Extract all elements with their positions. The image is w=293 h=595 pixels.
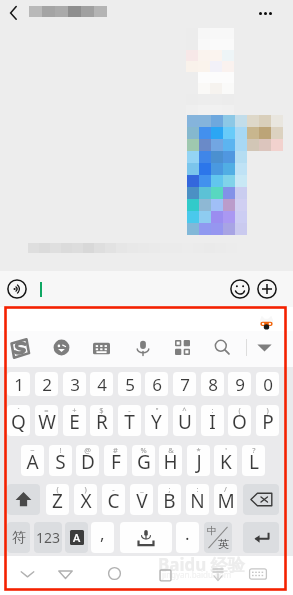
button[interactable]: Voice input <box>134 339 152 357</box>
button[interactable]: 6 <box>145 372 168 396</box>
staticText: X <box>80 488 92 514</box>
button[interactable]: 3 <box>63 372 86 396</box>
button[interactable]: 5 <box>118 372 141 396</box>
button[interactable]: ' <box>214 445 237 476</box>
button[interactable]: Hide keyboard <box>17 563 38 584</box>
staticText: $ <box>99 405 104 415</box>
button[interactable]: % <box>132 445 155 476</box>
staticText: 7 <box>180 373 190 396</box>
staticText: R <box>96 409 108 435</box>
staticText: * <box>196 445 201 455</box>
button[interactable]: $ <box>90 405 113 436</box>
staticText: T <box>124 409 135 435</box>
button[interactable]: Hide toolbar <box>256 342 273 353</box>
button[interactable]: Emoji <box>230 279 250 299</box>
staticText: N <box>190 488 205 514</box>
staticText: F <box>111 449 121 475</box>
staticText: % <box>140 445 147 455</box>
button[interactable]: 9 <box>228 372 251 396</box>
button[interactable]: Shift <box>7 484 40 515</box>
button[interactable]: ; <box>158 484 181 515</box>
button[interactable]: # <box>104 445 127 476</box>
staticText: jingyan.baidu.com <box>162 569 232 580</box>
button[interactable]: 4 <box>90 372 113 396</box>
button[interactable]: Home <box>104 563 125 584</box>
staticText: G <box>137 449 151 475</box>
staticText: U <box>178 409 192 435</box>
button[interactable]: Backspace <box>243 484 279 515</box>
button[interactable]: : <box>201 405 224 436</box>
button[interactable]: More options <box>252 2 278 24</box>
button[interactable]: ^ <box>173 405 196 436</box>
button[interactable]: * <box>187 445 210 476</box>
button[interactable]: Switch language <box>204 522 232 553</box>
button[interactable]: ) <box>74 484 97 515</box>
staticText: ? <box>252 445 256 455</box>
staticText: B <box>163 488 176 514</box>
button[interactable]: Voice input <box>7 279 27 299</box>
staticText: W <box>38 409 56 435</box>
button[interactable]: 2 <box>35 372 58 396</box>
button[interactable]: Recent apps <box>155 563 176 584</box>
button[interactable]: Numbers <box>34 522 62 553</box>
button[interactable]: Space <box>120 522 172 553</box>
staticText: C <box>107 488 120 514</box>
button[interactable]: Keyboard layout <box>93 340 110 357</box>
button[interactable]: 8 <box>201 372 224 396</box>
button[interactable]: 7 <box>173 372 196 396</box>
button[interactable]: ? <box>242 445 265 476</box>
staticText: Z <box>52 488 63 514</box>
staticText: , <box>100 522 105 545</box>
button[interactable]: Search <box>214 339 231 356</box>
button[interactable]: 0 <box>256 372 279 396</box>
staticText: ^ <box>182 405 187 415</box>
staticText: ' <box>225 445 227 455</box>
staticText: S <box>55 449 66 475</box>
button[interactable]: / <box>214 484 237 515</box>
staticText: O <box>232 409 247 435</box>
staticText: 8 <box>208 373 218 396</box>
button[interactable]: Back <box>3 1 25 23</box>
button[interactable]: Symbols <box>7 522 30 553</box>
button[interactable]: ! <box>49 445 72 476</box>
button[interactable]: = <box>35 405 58 436</box>
staticText: A <box>26 449 39 475</box>
staticText: ! <box>59 445 62 455</box>
button[interactable]: + <box>63 405 86 436</box>
staticText: K <box>220 449 232 475</box>
button[interactable]: Switch keyboard <box>248 564 268 584</box>
button[interactable]: : <box>186 484 209 515</box>
button[interactable]: ( <box>46 484 69 515</box>
button[interactable]: More functions <box>257 279 277 299</box>
button[interactable]: - <box>118 405 141 436</box>
button[interactable]: _ <box>130 484 153 515</box>
button[interactable]: ) <box>256 405 279 436</box>
button[interactable]: Enter <box>243 522 279 553</box>
staticText: A <box>73 530 81 545</box>
staticText: 6 <box>152 373 162 396</box>
button[interactable]: Stickers <box>53 339 70 356</box>
staticText: & <box>168 445 174 455</box>
button[interactable]: ( <box>228 405 251 436</box>
button[interactable]: @ <box>76 445 99 476</box>
button[interactable]: Back <box>55 563 76 584</box>
button[interactable]: ~ <box>21 445 44 476</box>
button[interactable]: & <box>159 445 182 476</box>
button[interactable]: Close keyboard <box>208 563 228 583</box>
button[interactable]: Period <box>176 522 199 553</box>
button[interactable]: ` <box>7 405 30 436</box>
staticText: / <box>224 484 227 494</box>
staticText: ( <box>238 405 241 415</box>
button[interactable]: Capitalize <box>65 522 88 553</box>
button[interactable]: " <box>145 405 168 436</box>
button[interactable]: - <box>102 484 125 515</box>
button[interactable]: Comma <box>91 522 114 553</box>
staticText: - <box>128 405 131 415</box>
staticText: 123 <box>36 528 61 547</box>
staticText: L <box>249 449 259 475</box>
button[interactable]: Sogou menu <box>11 338 29 359</box>
staticText: I <box>209 409 216 435</box>
button[interactable]: 1 <box>7 372 30 396</box>
staticText: ( <box>56 484 59 494</box>
button[interactable]: More tools <box>175 340 190 355</box>
